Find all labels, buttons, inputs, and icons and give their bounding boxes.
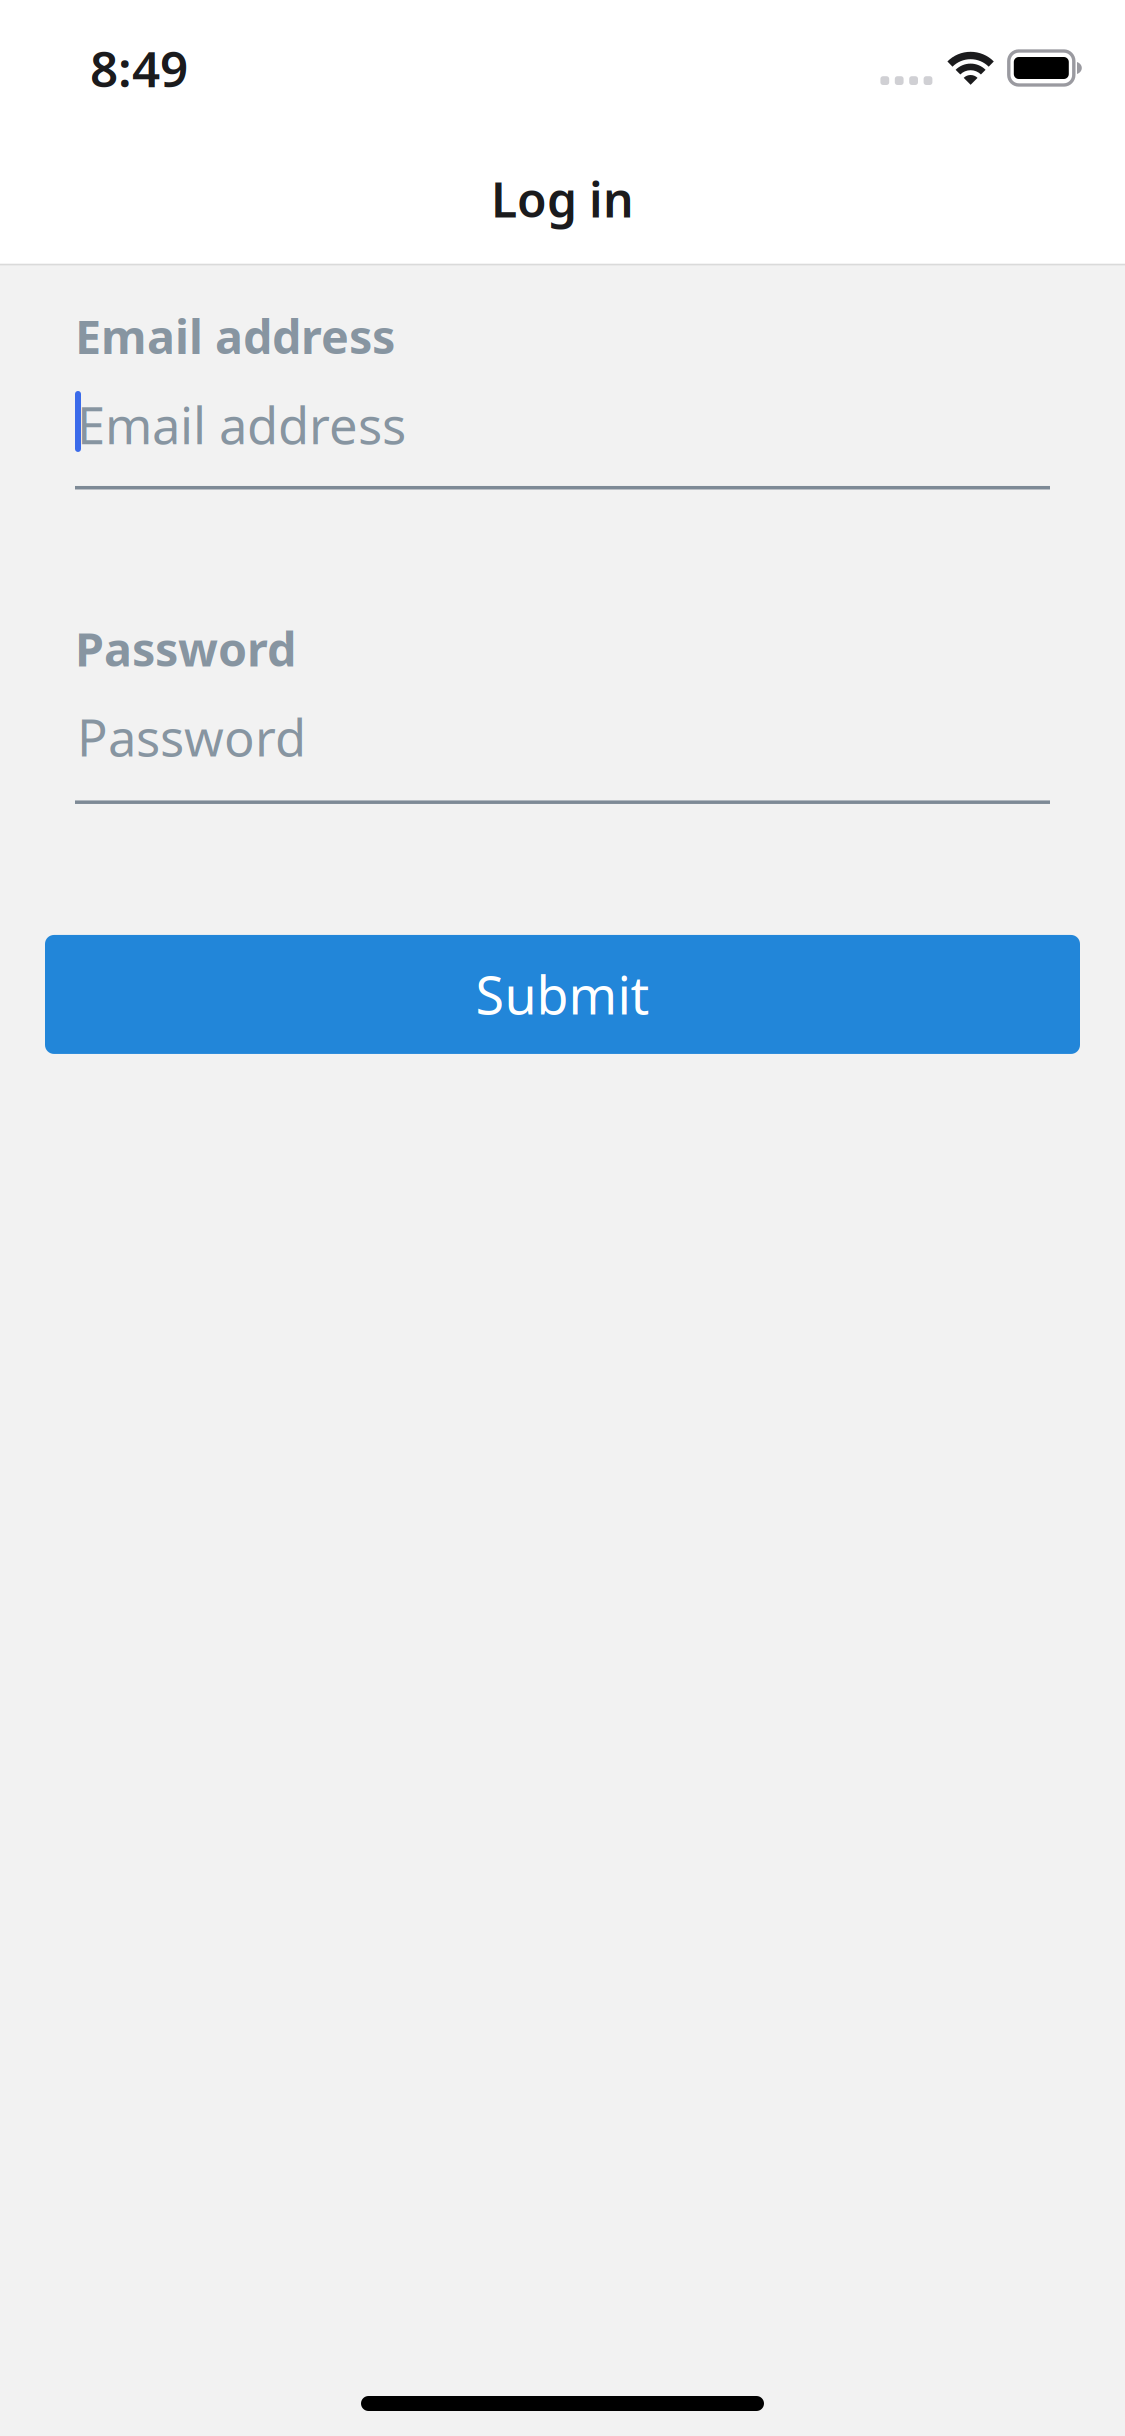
staticText: Password — [77, 703, 306, 771]
button[interactable]: Submit — [45, 935, 1080, 1054]
staticText: Email address — [77, 391, 406, 458]
staticText: Email address — [75, 305, 395, 367]
staticText: Password — [75, 617, 296, 679]
button[interactable]: Email address — [75, 391, 1050, 489]
button[interactable]: Password — [75, 703, 1050, 804]
staticText: 8:49 — [90, 35, 188, 101]
staticText: Submit — [475, 960, 649, 1029]
staticText: Log in — [491, 167, 634, 231]
